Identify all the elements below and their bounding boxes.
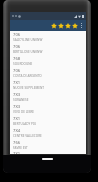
staticText: 706 (13, 68, 21, 74)
staticText: 706 (13, 44, 21, 50)
staticText: SOURDOGNE (13, 62, 33, 66)
staticText: 7X1 (13, 151, 21, 154)
staticText: COSTA DI ARGENTO (13, 74, 42, 78)
staticText: SALICYLINE UNKNW (13, 38, 43, 42)
button[interactable]: 7X1 (10, 115, 86, 127)
staticText: BERTULADY PIU (13, 122, 37, 126)
button[interactable]: 7X1 (10, 151, 86, 154)
staticText: FAVRE EST (13, 146, 28, 150)
button[interactable]: 7X4 (10, 127, 86, 139)
staticText: VIVO DE LIBRE (13, 110, 35, 114)
button[interactable]: Star (57, 21, 64, 30)
button[interactable]: 768 (10, 55, 86, 67)
button[interactable]: Star (50, 21, 57, 30)
button[interactable]: Star (64, 21, 71, 30)
button[interactable]: 7X3 (10, 103, 86, 115)
button[interactable]: 7X1 (10, 79, 86, 91)
staticText: 7X1 (13, 116, 21, 122)
staticText: CENTRE VALLECORE (13, 134, 42, 138)
staticText: 7X4 (13, 128, 21, 134)
staticText: 7X1 (13, 80, 21, 86)
button[interactable]: More options (78, 21, 84, 30)
staticText: NUOVE SUPPLEMENT (13, 86, 45, 90)
button[interactable]: 706 (10, 43, 86, 55)
staticText: 768 (13, 56, 21, 62)
button[interactable]: Star (71, 21, 78, 30)
button[interactable]: 766 (10, 139, 86, 151)
button[interactable]: 706 (10, 67, 86, 79)
staticText: 7X3 (13, 104, 21, 110)
button[interactable]: 706 (10, 31, 86, 43)
staticText: 706 (13, 32, 21, 38)
staticText: BIRTILLOSE UNKNW (13, 50, 43, 54)
staticText: 766 (13, 140, 21, 146)
button[interactable]: 7X3 (10, 91, 86, 103)
staticText: 7X3 (13, 92, 21, 98)
staticText: SORANESE (13, 98, 29, 102)
